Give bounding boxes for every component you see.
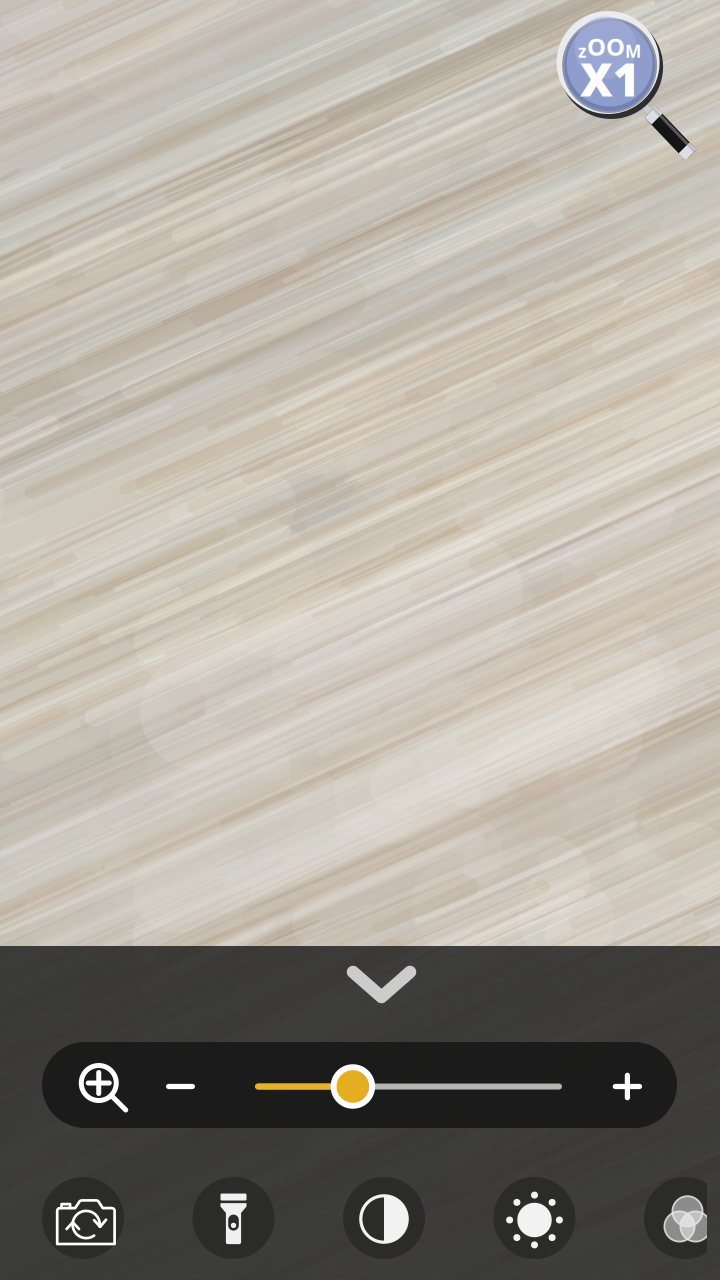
button[interactable]: Zoom level, 1 times <box>331 1064 375 1109</box>
button[interactable]: Contrast <box>343 1177 425 1259</box>
button[interactable]: Color filters <box>644 1177 720 1259</box>
button[interactable]: Zoom level X1 <box>550 0 720 170</box>
button[interactable]: Brightness <box>493 1177 575 1259</box>
button[interactable]: Zoom out <box>145 1042 215 1128</box>
staticText: M <box>625 39 641 62</box>
staticText: X1 <box>580 49 640 109</box>
staticText: z <box>578 39 587 62</box>
button[interactable]: Flashlight <box>192 1177 274 1259</box>
button[interactable]: Collapse controls <box>316 953 446 1015</box>
staticText: OO <box>587 31 625 62</box>
button[interactable]: Zoom in <box>589 1042 665 1128</box>
button[interactable]: Switch camera <box>42 1177 124 1259</box>
button[interactable]: Zoom <box>57 1042 141 1128</box>
